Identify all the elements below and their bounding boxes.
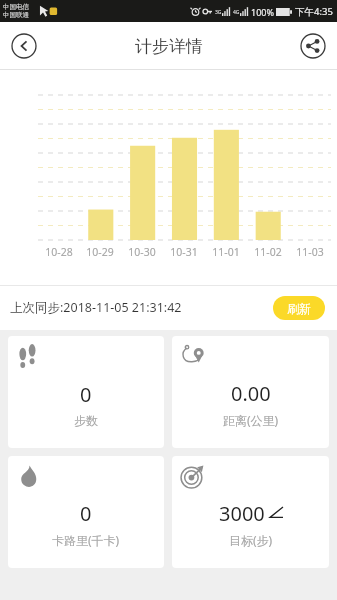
staticText: 0.00 (231, 380, 271, 407)
staticText: 3000 (219, 500, 265, 527)
button[interactable]: 3000 (172, 456, 329, 568)
staticText: 中国电信 (3, 3, 29, 11)
staticText: 11-01 (212, 245, 240, 259)
staticText: 下午4:35 (295, 5, 333, 18)
staticText: 计步详情 (135, 36, 203, 57)
staticText: 10-31 (170, 245, 198, 259)
staticText: 100% (251, 6, 274, 18)
staticText: 10-30 (128, 245, 156, 259)
staticText: 3G (215, 9, 222, 16)
staticText: 步数 (74, 413, 98, 428)
staticText: 上次同步:2018-11-05 21:31:42 (10, 299, 182, 316)
button[interactable]: 刷新 (273, 296, 325, 320)
staticText: 中国联通 (3, 11, 29, 19)
staticText: 刷新 (287, 301, 311, 316)
staticText: 10-28 (45, 245, 73, 259)
staticText: 4G (233, 9, 240, 16)
staticText: 10-29 (86, 245, 114, 259)
staticText: 距离(公里) (223, 412, 279, 428)
staticText: 0 (80, 381, 92, 408)
staticText: 11-02 (254, 245, 282, 259)
staticText: 卡路里(千卡) (52, 532, 120, 548)
staticText: 0 (80, 500, 92, 527)
button[interactable]: Back (10, 32, 38, 60)
button[interactable]: 0 (8, 336, 164, 448)
staticText: 目标(步) (229, 532, 273, 548)
button[interactable]: 0.00 (172, 336, 329, 448)
staticText: 11-03 (296, 245, 324, 259)
button[interactable]: 0 (8, 456, 164, 568)
button[interactable]: Share (299, 32, 327, 60)
